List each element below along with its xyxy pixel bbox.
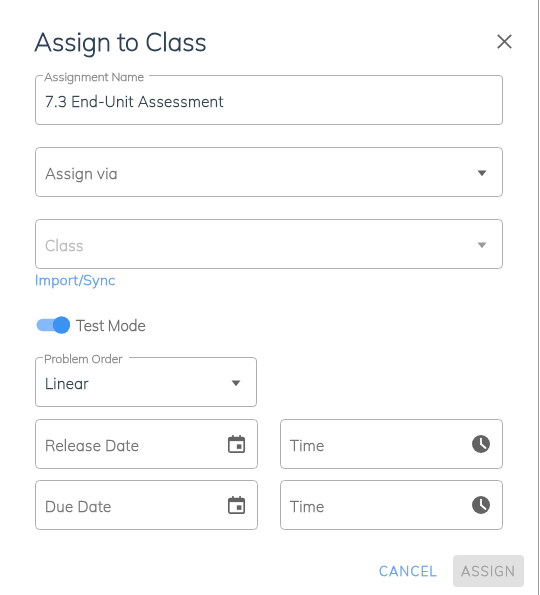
button[interactable]: CANCEL <box>365 555 451 587</box>
staticText: Assignment Name <box>44 69 145 84</box>
staticText: Class <box>45 236 84 255</box>
staticText: Time <box>290 436 325 455</box>
button[interactable]: Class <box>35 219 503 269</box>
button[interactable]: Close <box>488 25 520 57</box>
button[interactable]: Test Mode <box>34 312 146 338</box>
button[interactable]: Time <box>280 480 503 530</box>
staticText: Assign via <box>45 164 118 183</box>
button[interactable]: Problem Order <box>35 357 257 407</box>
staticText: Test Mode <box>76 316 146 335</box>
button[interactable]: Time <box>280 419 503 469</box>
staticText: CANCEL <box>379 563 438 579</box>
staticText: Assign to Class <box>34 26 207 57</box>
staticText: Linear <box>45 374 89 393</box>
staticText: Import/Sync <box>35 271 116 289</box>
button[interactable]: Assign via <box>35 147 503 197</box>
staticText: Release Date <box>45 436 140 455</box>
staticText: Due Date <box>45 497 112 516</box>
staticText: Time <box>290 497 325 516</box>
staticText: ASSIGN <box>461 563 516 579</box>
button[interactable]: ASSIGN <box>453 555 524 587</box>
button[interactable]: Release Date <box>35 419 258 469</box>
staticText: 7.3 End-Unit Assessment <box>45 92 224 111</box>
button[interactable]: Assignment Name <box>35 75 503 125</box>
button[interactable]: Due Date <box>35 480 258 530</box>
button[interactable]: Import/Sync <box>35 271 116 289</box>
staticText: Problem Order <box>44 351 123 366</box>
